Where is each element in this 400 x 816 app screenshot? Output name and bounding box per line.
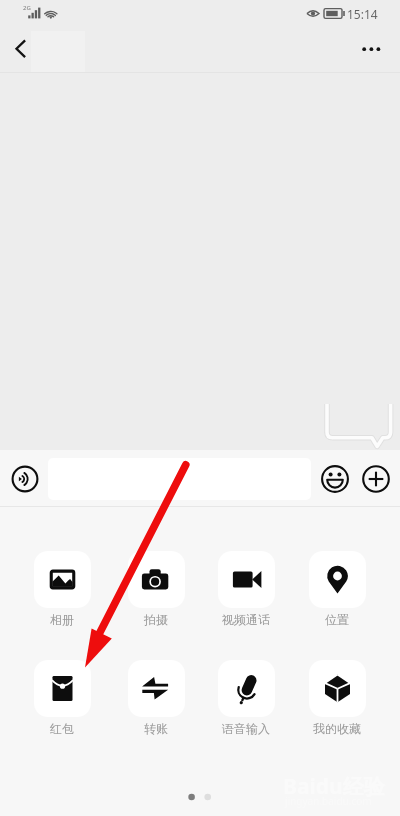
- button[interactable]: 相册: [29, 551, 95, 635]
- button[interactable]: 转账: [123, 660, 189, 744]
- staticText: 相册: [50, 612, 74, 627]
- button[interactable]: Emoji: [321, 465, 349, 493]
- button[interactable]: Voice message: [5, 459, 45, 499]
- staticText: 拍摄: [144, 612, 168, 627]
- button[interactable]: 视频通话: [213, 551, 279, 635]
- button[interactable]: Back: [0, 28, 34, 73]
- staticText: 我的收藏: [313, 721, 361, 736]
- button[interactable]: More options: [354, 28, 400, 73]
- button[interactable]: 拍摄: [123, 551, 189, 635]
- button[interactable]: 位置: [304, 551, 370, 635]
- button[interactable]: 语音输入: [213, 660, 279, 744]
- button[interactable]: [48, 458, 311, 500]
- button[interactable]: More functions: [362, 465, 390, 493]
- staticText: 语音输入: [222, 721, 270, 736]
- staticText: 15:14: [347, 6, 378, 22]
- staticText: 2G: [23, 4, 31, 12]
- button[interactable]: 红包: [29, 660, 95, 744]
- staticText: 位置: [325, 612, 349, 627]
- button[interactable]: 我的收藏: [304, 660, 370, 744]
- staticText: 转账: [144, 721, 168, 736]
- staticText: 视频通话: [222, 612, 270, 627]
- staticText: 红包: [50, 721, 74, 736]
